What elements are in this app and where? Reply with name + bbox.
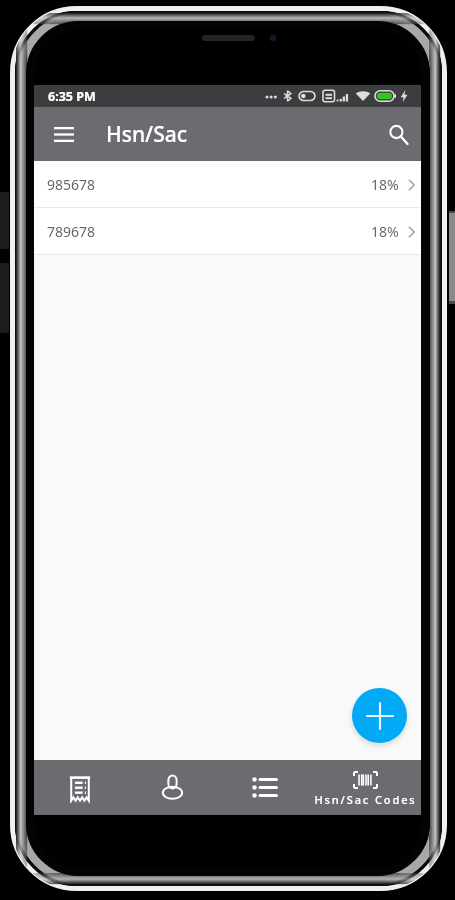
staticText: 985678	[47, 175, 96, 194]
button[interactable]: 985678	[34, 161, 421, 208]
button[interactable]: Hsn/Sac Codes	[310, 760, 421, 815]
button[interactable]: Customers	[126, 760, 218, 815]
staticText: 789678	[47, 222, 96, 241]
button[interactable]: Items	[218, 760, 310, 815]
staticText: Hsn/Sac Codes	[314, 792, 417, 807]
staticText: 18%	[371, 175, 399, 194]
staticText: 6:35 PM	[48, 88, 96, 105]
button[interactable]: Add	[352, 688, 407, 743]
button[interactable]: Menu	[44, 114, 84, 154]
button[interactable]: Search	[378, 114, 418, 154]
staticText: Hsn/Sac	[106, 120, 188, 149]
button[interactable]: Invoices	[34, 760, 126, 815]
staticText: 18%	[371, 222, 399, 241]
button[interactable]: 789678	[34, 208, 421, 255]
